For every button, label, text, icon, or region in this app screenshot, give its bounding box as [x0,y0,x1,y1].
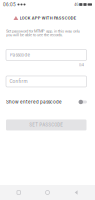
button[interactable]: SET PASSCODE [0,119,95,130]
staticText: Show entered passcode [6,99,62,105]
staticText: SET PASSCODE [29,122,63,128]
staticText: Passcode [9,52,29,58]
button[interactable]: Show entered passcode [0,97,95,106]
staticText: 06:05 [3,2,16,7]
button[interactable]: Back [66,185,86,200]
staticText: Confirm [9,79,27,84]
staticText: 4G [74,2,78,7]
button[interactable]: Recents [9,185,29,200]
staticText: 0/4 [79,63,84,67]
staticText: Set password for MTMP app, in this way o… [6,29,80,33]
button[interactable]: Home [37,185,57,200]
staticText: LOCK APP WITH PASSCODE [20,16,76,20]
staticText: you will be able to see the records. [6,32,63,37]
